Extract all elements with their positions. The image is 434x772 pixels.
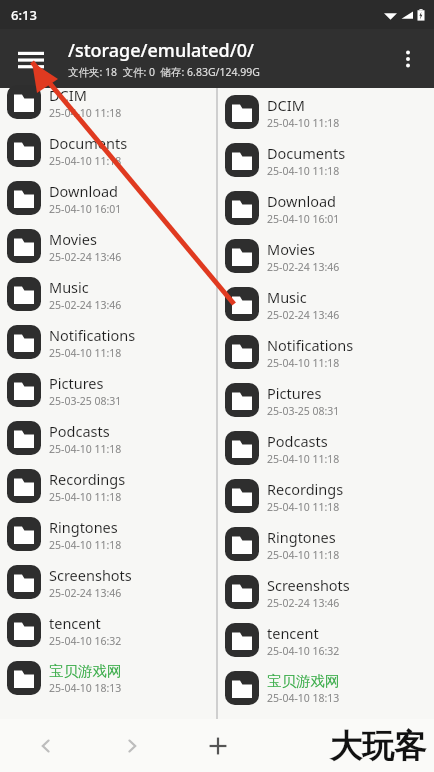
button[interactable]: Movies — [218, 232, 434, 280]
staticText: Movies — [267, 239, 315, 259]
staticText: 25-04-10 16:32 — [267, 644, 340, 658]
button[interactable]: Ringtones — [0, 510, 216, 558]
staticText: 25-04-10 11:18 — [49, 538, 122, 552]
staticText: 25-03-25 08:31 — [49, 394, 122, 408]
staticText: Pictures — [267, 383, 322, 403]
staticText: Ringtones — [267, 527, 336, 547]
button[interactable]: Notifications — [218, 328, 434, 376]
staticText: 25-04-10 16:01 — [49, 202, 122, 216]
staticText: 25-04-10 11:18 — [49, 106, 122, 120]
staticText: Notifications — [267, 335, 354, 355]
staticText: 25-04-10 11:18 — [267, 500, 340, 514]
button[interactable]: DCIM — [0, 78, 216, 126]
staticText: Screenshots — [267, 575, 350, 595]
button[interactable]: Movies — [0, 222, 216, 270]
staticText: /storage/emulated/0/ — [68, 38, 254, 63]
button[interactable]: tencent — [0, 606, 216, 654]
staticText: 25-04-10 11:18 — [49, 154, 122, 168]
button[interactable]: tencent — [218, 616, 434, 664]
button[interactable]: 宝贝游戏网 — [0, 654, 216, 702]
button[interactable]: Screenshots — [218, 568, 434, 616]
staticText: Screenshots — [49, 565, 132, 585]
button[interactable]: Podcasts — [218, 424, 434, 472]
button[interactable]: DCIM — [218, 88, 434, 136]
button[interactable]: Podcasts — [0, 414, 216, 462]
staticText: Movies — [49, 229, 97, 249]
button[interactable]: Music — [0, 270, 216, 318]
staticText: 25-02-24 13:46 — [267, 308, 340, 322]
staticText: Documents — [267, 143, 346, 163]
staticText: 25-04-10 11:18 — [267, 164, 340, 178]
staticText: 25-04-10 11:18 — [267, 116, 340, 130]
staticText: DCIM — [267, 95, 305, 115]
staticText: 文件夹: 18 文件: 0 储存: 6.83G/124.99G — [68, 65, 260, 79]
staticText: 25-04-10 11:18 — [267, 452, 340, 466]
staticText: Podcasts — [49, 421, 110, 441]
staticText: Download — [267, 191, 336, 211]
staticText: DCIM — [49, 85, 87, 105]
button[interactable]: Open navigation drawer — [10, 38, 52, 80]
staticText: Music — [267, 287, 307, 307]
staticText: 25-02-24 13:46 — [267, 260, 340, 274]
button[interactable]: Screenshots — [0, 558, 216, 606]
staticText: 25-02-24 13:46 — [49, 298, 122, 312]
button[interactable]: Documents — [218, 136, 434, 184]
button[interactable]: Forward — [110, 724, 154, 768]
button[interactable]: Pictures — [0, 366, 216, 414]
staticText: 25-04-10 11:18 — [267, 548, 340, 562]
staticText: 25-02-24 13:46 — [49, 250, 122, 264]
staticText: Recordings — [267, 479, 344, 499]
button[interactable]: Documents — [0, 126, 216, 174]
button[interactable]: Music — [218, 280, 434, 328]
staticText: Download — [49, 181, 118, 201]
button[interactable]: More options — [388, 39, 428, 79]
staticText: 25-03-25 08:31 — [267, 404, 340, 418]
staticText: 25-04-10 18:13 — [49, 681, 122, 695]
staticText: Documents — [49, 133, 128, 153]
staticText: 25-04-10 11:18 — [49, 346, 122, 360]
staticText: 25-04-10 16:32 — [49, 634, 122, 648]
button[interactable]: Recordings — [0, 462, 216, 510]
staticText: 25-02-24 13:46 — [49, 586, 122, 600]
staticText: 25-04-10 16:01 — [267, 212, 340, 226]
staticText: 6:13 — [11, 6, 37, 24]
staticText: 宝贝游戏网 — [49, 662, 122, 680]
staticText: Recordings — [49, 469, 126, 489]
button[interactable]: Ringtones — [218, 520, 434, 568]
staticText: 25-04-10 11:18 — [49, 490, 122, 504]
button[interactable]: Add — [196, 724, 240, 768]
button[interactable]: Download — [218, 184, 434, 232]
staticText: tencent — [49, 613, 101, 633]
staticText: Music — [49, 277, 89, 297]
button[interactable]: 宝贝游戏网 — [218, 664, 434, 712]
button[interactable]: Notifications — [0, 318, 216, 366]
staticText: 25-04-10 18:13 — [267, 691, 340, 705]
staticText: Ringtones — [49, 517, 118, 537]
staticText: Pictures — [49, 373, 104, 393]
button[interactable]: Pictures — [218, 376, 434, 424]
staticText: Podcasts — [267, 431, 328, 451]
staticText: tencent — [267, 623, 319, 643]
button[interactable]: Recordings — [218, 472, 434, 520]
button[interactable]: Back — [24, 724, 68, 768]
staticText: 25-04-10 11:18 — [49, 442, 122, 456]
staticText: 25-02-24 13:46 — [267, 596, 340, 610]
staticText: 宝贝游戏网 — [267, 672, 340, 690]
staticText: 大玩客 — [330, 726, 426, 766]
button[interactable]: Download — [0, 174, 216, 222]
staticText: Notifications — [49, 325, 136, 345]
staticText: 25-04-10 11:18 — [267, 356, 340, 370]
